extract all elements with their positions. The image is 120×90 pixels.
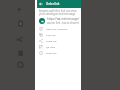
staticText: Order link	[46, 2, 60, 6]
staticText: Copy link	[46, 34, 56, 37]
staticText: View your collection	[46, 28, 68, 31]
button[interactable]: Copy link	[35, 32, 81, 38]
staticText: https://wa.me/message/ABCD	[47, 17, 81, 21]
staticText: Anyone with this link can view your cata…	[39, 9, 80, 16]
staticText: Reset link	[46, 52, 57, 55]
button[interactable]: View your collection	[35, 26, 81, 32]
button[interactable]: Reset link	[35, 50, 81, 56]
button[interactable]: Back	[38, 1, 44, 7]
button[interactable]: Share link	[35, 38, 81, 44]
button[interactable]: QR code	[35, 44, 81, 50]
button[interactable]: https://wa.me/message/ABCD	[39, 17, 81, 24]
staticText: Share link	[46, 40, 57, 43]
staticText: QR code	[46, 46, 56, 49]
staticText: wa.me link - tap to share it	[47, 21, 80, 24]
